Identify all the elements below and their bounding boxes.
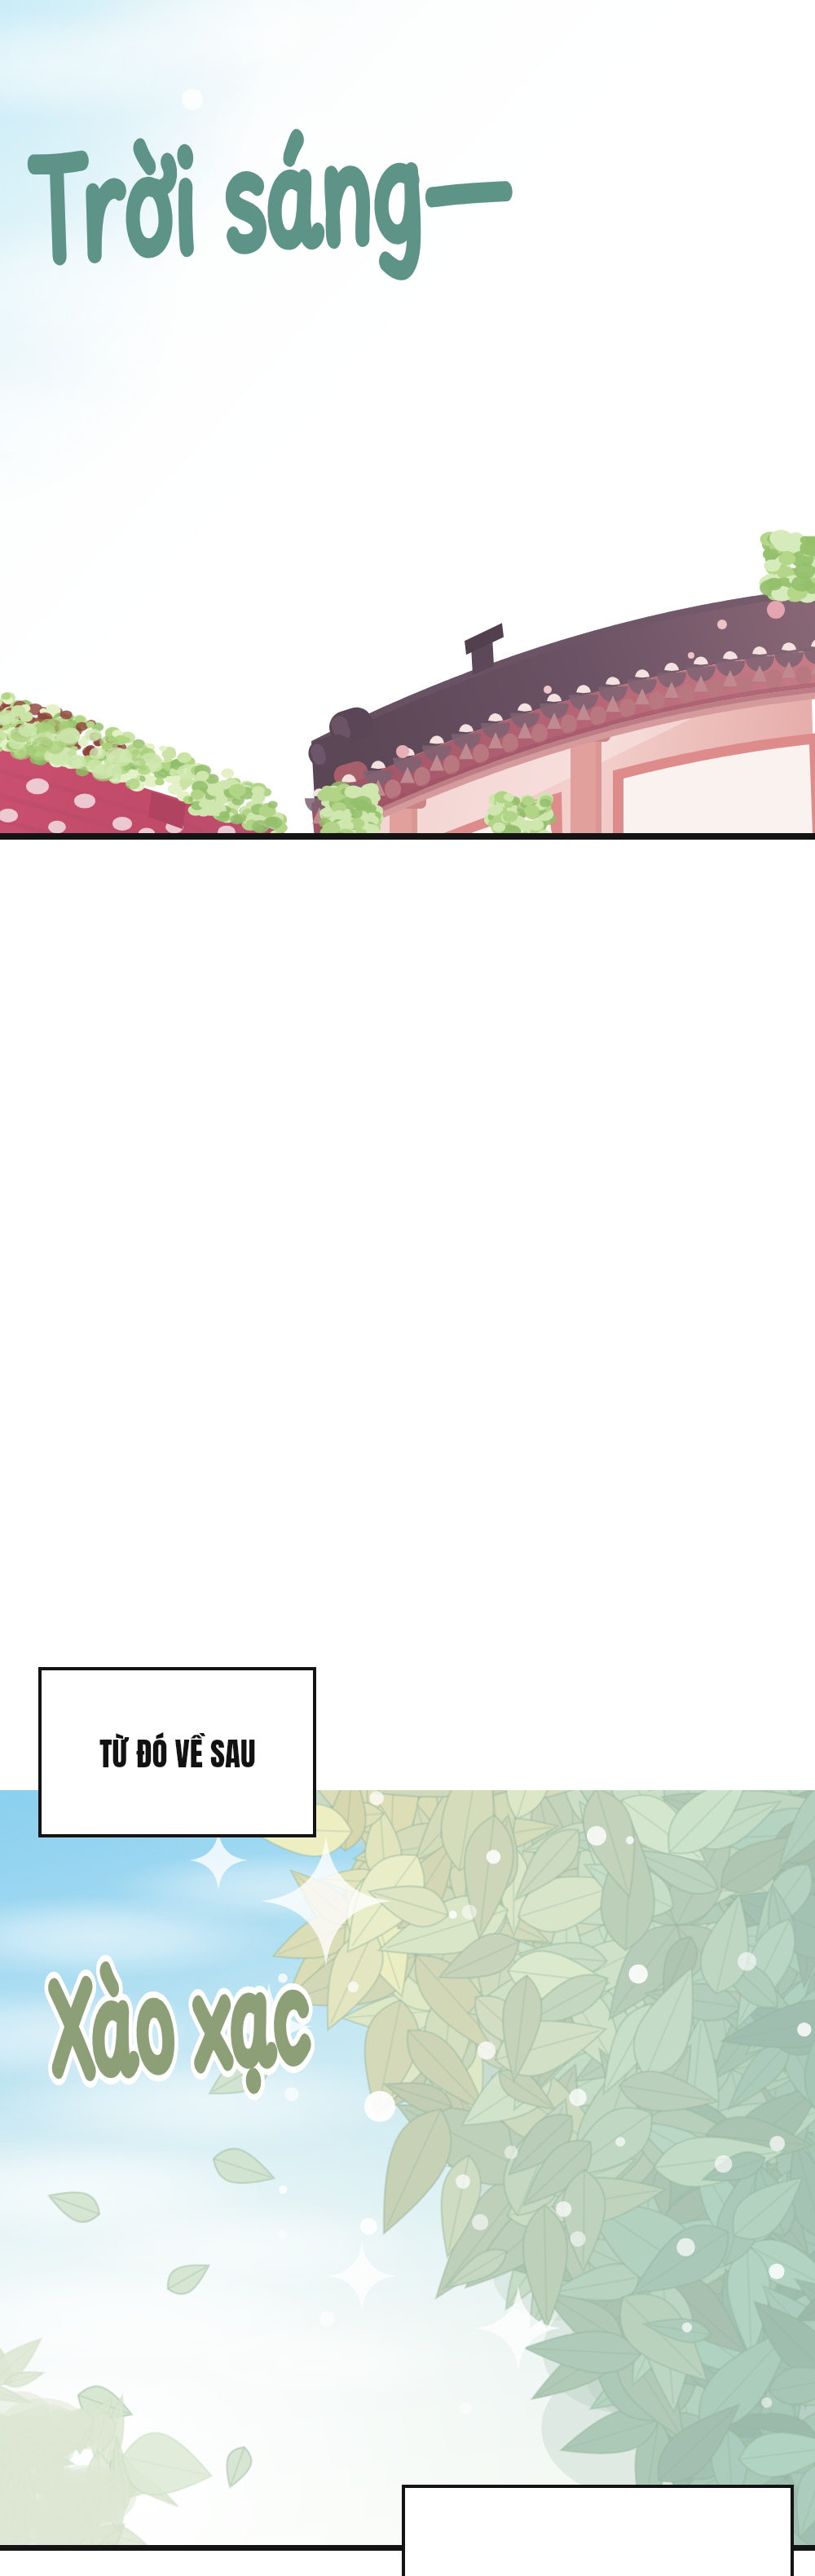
staticText: Xào xạc [45,1918,314,2117]
staticText: Xào xạc [45,1918,314,2117]
staticText: Trời sáng— [24,79,519,304]
staticText: Xào xạc [45,1918,314,2117]
button[interactable]: Trời sáng— [0,0,815,2576]
button[interactable] [402,2485,794,2576]
button[interactable]: TỪ ĐÓ VỀ SAU [38,1667,316,1837]
staticText: Trời sáng— [24,79,519,304]
staticText: TỪ ĐÓ VỀ SAU [99,1730,256,1778]
